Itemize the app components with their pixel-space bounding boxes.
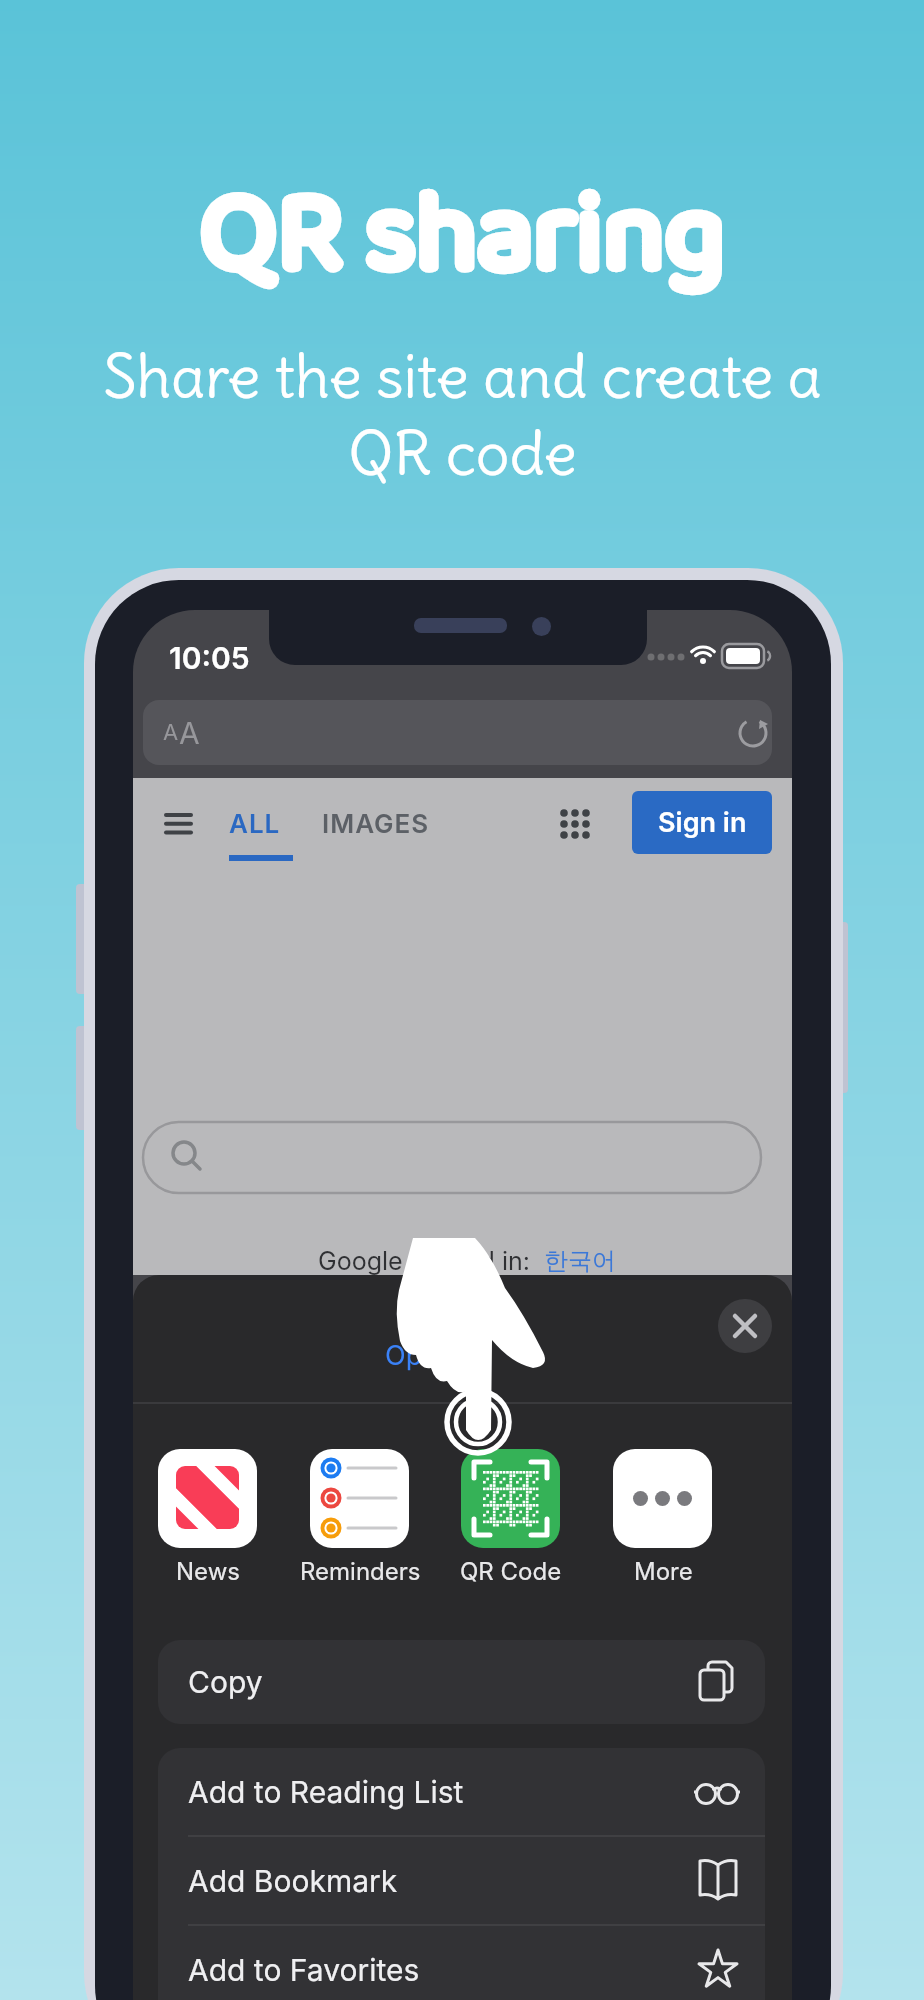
button[interactable] <box>461 1449 560 1548</box>
button[interactable] <box>158 1449 257 1548</box>
staticText: 한국어 <box>544 1246 616 1276</box>
staticText: QR sharing <box>200 146 725 298</box>
staticText: QR Code <box>460 1557 562 1586</box>
staticText: More <box>634 1557 693 1586</box>
button[interactable] <box>718 1299 772 1353</box>
staticText: Add to Favorites <box>188 1952 420 1988</box>
staticText: Sign in <box>658 806 747 839</box>
button[interactable]: Sign in <box>632 791 772 854</box>
staticText: Add Bookmark <box>188 1863 398 1899</box>
button[interactable] <box>613 1449 712 1548</box>
staticText: IMAGES <box>322 808 430 839</box>
staticText: Share the site and create a QR code <box>103 339 822 492</box>
staticText: Add to Reading List <box>188 1774 464 1810</box>
staticText: 10:05 <box>169 640 250 676</box>
button[interactable]: Add to Reading List <box>158 1748 765 1835</box>
button[interactable] <box>310 1449 409 1548</box>
button[interactable]: Copy <box>158 1640 765 1724</box>
staticText: Google offered in: <box>318 1246 544 1276</box>
staticText: News <box>176 1557 240 1586</box>
button[interactable]: Add Bookmark <box>158 1837 765 1924</box>
staticText: Copy <box>188 1664 263 1700</box>
staticText: QR sharing <box>200 146 725 298</box>
staticText: Options <box>385 1339 484 1372</box>
staticText: A <box>179 715 200 751</box>
staticText: ALL <box>229 808 281 839</box>
staticText: A <box>163 719 179 746</box>
staticText: Reminders <box>300 1557 421 1586</box>
button[interactable]: Add to Favorites <box>158 1926 765 2000</box>
